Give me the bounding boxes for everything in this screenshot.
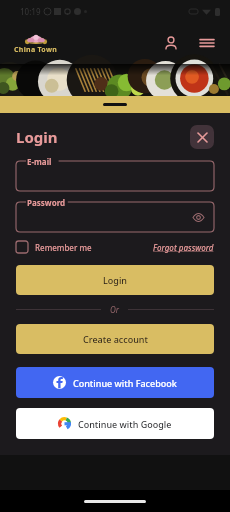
staticText: Or (110, 304, 119, 315)
button[interactable]: Menu (196, 32, 218, 54)
button[interactable]: Forgot password (153, 242, 214, 253)
staticText: Forgot password (153, 242, 214, 253)
button[interactable]: Create account (16, 324, 214, 354)
button[interactable]: Close (190, 125, 214, 149)
button[interactable]: E-mail (16, 161, 214, 191)
staticText: Login (16, 127, 58, 147)
button[interactable]: Continue with Facebook (16, 367, 214, 398)
button[interactable]: Account (160, 32, 182, 54)
button[interactable]: Password (16, 202, 214, 232)
button[interactable]: Show password (190, 209, 206, 225)
staticText: Remember me (35, 242, 92, 253)
button[interactable]: Continue with Google (16, 408, 214, 439)
staticText: 10:19 (20, 6, 41, 17)
button[interactable]: Login (16, 265, 214, 295)
staticText: Login (103, 274, 127, 286)
staticText: Continue with Facebook (73, 377, 177, 389)
staticText: Create account (83, 333, 148, 345)
staticText: Password (27, 197, 66, 208)
staticText: Continue with Google (78, 418, 172, 430)
button[interactable]: Remember me (16, 241, 92, 253)
staticText: E-mail (27, 156, 52, 167)
staticText: China Town (14, 45, 58, 55)
